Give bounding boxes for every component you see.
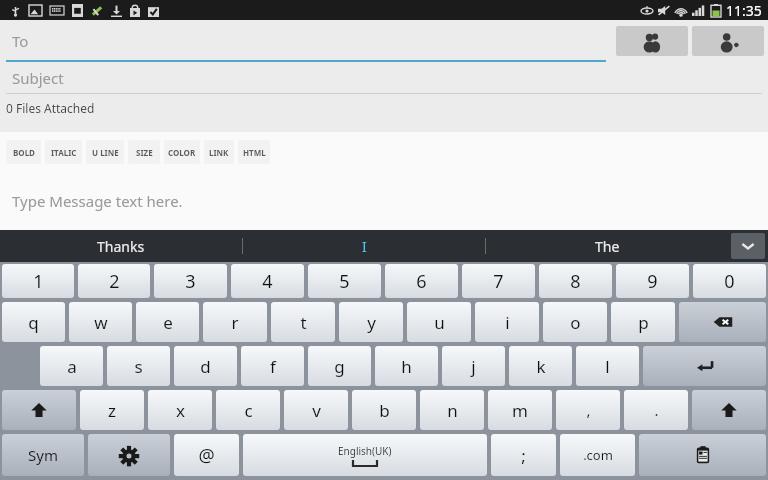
- staticText: p: [638, 311, 649, 334]
- button[interactable]: Type Message text here.: [0, 188, 768, 214]
- button[interactable]: Space: [243, 434, 487, 476]
- button[interactable]: 6: [385, 264, 458, 298]
- button[interactable]: v: [284, 390, 348, 430]
- button[interactable]: 7: [462, 264, 535, 298]
- button[interactable]: p: [611, 302, 675, 342]
- staticText: j: [471, 355, 476, 378]
- button[interactable]: j: [442, 346, 505, 386]
- button[interactable]: Sym: [2, 434, 84, 476]
- staticText: 4: [262, 269, 273, 294]
- staticText: Type Message text here.: [12, 191, 183, 211]
- button[interactable]: y: [339, 302, 403, 342]
- button[interactable]: r: [203, 302, 267, 342]
- staticText: I: [362, 237, 367, 256]
- button[interactable]: 9: [616, 264, 689, 298]
- staticText: ,: [586, 400, 591, 420]
- staticText: 5: [339, 269, 350, 294]
- staticText: Sym: [28, 445, 58, 465]
- staticText: 8: [570, 269, 581, 294]
- staticText: u: [434, 311, 445, 334]
- button[interactable]: w: [69, 302, 132, 342]
- staticText: ITALIC: [51, 147, 77, 158]
- button[interactable]: HTML: [238, 140, 270, 164]
- staticText: 0: [724, 269, 735, 294]
- button[interactable]: LINK: [204, 140, 234, 164]
- button[interactable]: Enter: [643, 346, 766, 386]
- button[interactable]: 3: [154, 264, 227, 298]
- button[interactable]: ITALIC: [45, 140, 82, 164]
- staticText: English(UK): [338, 444, 392, 458]
- button[interactable]: x: [148, 390, 212, 430]
- staticText: o: [570, 311, 581, 334]
- staticText: @: [198, 443, 215, 468]
- button[interactable]: 8: [539, 264, 612, 298]
- staticText: 3: [185, 269, 196, 294]
- button[interactable]: u: [407, 302, 471, 342]
- button[interactable]: U LINE: [86, 140, 124, 164]
- button[interactable]: 4: [231, 264, 304, 298]
- button[interactable]: ,: [556, 390, 620, 430]
- button[interactable]: t: [271, 302, 335, 342]
- staticText: t: [300, 311, 307, 334]
- button[interactable]: Clipboard: [639, 434, 766, 476]
- button[interactable]: m: [488, 390, 552, 430]
- button[interactable]: Shift: [2, 390, 76, 430]
- button[interactable]: h: [375, 346, 438, 386]
- button[interactable]: d: [174, 346, 237, 386]
- staticText: 11:35: [726, 1, 762, 20]
- button[interactable]: 0: [693, 264, 766, 298]
- staticText: 7: [493, 269, 504, 294]
- button[interactable]: z: [80, 390, 144, 430]
- button[interactable]: i: [475, 302, 539, 342]
- button[interactable]: f: [241, 346, 304, 386]
- staticText: s: [134, 355, 143, 378]
- staticText: q: [28, 311, 39, 334]
- button[interactable]: 2: [78, 264, 150, 298]
- button[interactable]: The: [486, 230, 728, 262]
- button[interactable]: s: [107, 346, 170, 386]
- button[interactable]: n: [420, 390, 484, 430]
- staticText: x: [176, 399, 185, 422]
- staticText: k: [536, 355, 546, 378]
- staticText: Subject: [12, 68, 64, 88]
- button[interactable]: o: [543, 302, 607, 342]
- button[interactable]: Shift: [692, 390, 766, 430]
- button[interactable]: e: [136, 302, 199, 342]
- button[interactable]: Settings: [88, 434, 170, 476]
- staticText: U LINE: [92, 147, 119, 158]
- staticText: .com: [583, 446, 613, 464]
- button[interactable]: Subject: [0, 62, 768, 94]
- button[interactable]: Thanks: [0, 230, 242, 262]
- staticText: w: [94, 311, 108, 334]
- button[interactable]: To: [0, 20, 612, 62]
- button[interactable]: @: [174, 434, 239, 476]
- button[interactable]: .: [624, 390, 688, 430]
- button[interactable]: c: [216, 390, 280, 430]
- button[interactable]: 1: [2, 264, 74, 298]
- button[interactable]: k: [509, 346, 572, 386]
- staticText: z: [108, 399, 116, 422]
- button[interactable]: .com: [560, 434, 635, 476]
- staticText: b: [379, 399, 390, 422]
- button[interactable]: 5: [308, 264, 381, 298]
- button[interactable]: b: [352, 390, 416, 430]
- staticText: .: [654, 400, 659, 420]
- button[interactable]: ;: [491, 434, 556, 476]
- button[interactable]: q: [2, 302, 65, 342]
- button[interactable]: I: [243, 230, 485, 262]
- button[interactable]: SIZE: [128, 140, 160, 164]
- button[interactable]: Add contact: [692, 26, 764, 56]
- button[interactable]: Expand suggestions: [731, 233, 765, 259]
- staticText: 2: [109, 269, 120, 294]
- button[interactable]: Contacts: [616, 26, 688, 56]
- button[interactable]: BOLD: [6, 140, 41, 164]
- button[interactable]: g: [308, 346, 371, 386]
- button[interactable]: l: [576, 346, 639, 386]
- staticText: c: [244, 399, 253, 422]
- staticText: 0 Files Attached: [6, 100, 95, 116]
- staticText: m: [512, 399, 528, 422]
- button[interactable]: COLOR: [164, 140, 200, 164]
- button[interactable]: Backspace: [679, 302, 766, 342]
- button[interactable]: a: [40, 346, 103, 386]
- staticText: SIZE: [136, 147, 153, 158]
